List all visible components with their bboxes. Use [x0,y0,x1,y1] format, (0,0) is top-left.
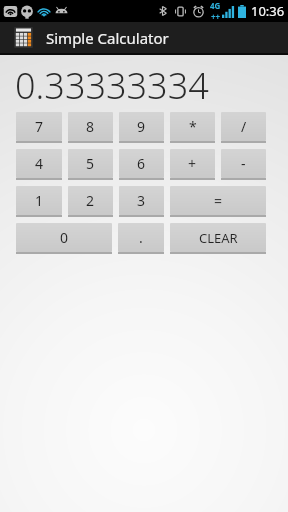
staticText: . [139,228,143,247]
button[interactable]: 2 [68,186,113,215]
button[interactable]: 0 [16,223,112,252]
button[interactable]: = [170,186,266,215]
staticText: 10:36 [251,2,285,20]
other: App icon [13,27,34,48]
staticText: 2 [86,191,95,210]
staticText: 9 [137,117,146,136]
staticText: 8 [86,117,95,136]
button[interactable]: . [118,223,164,252]
staticText: 4G [210,0,221,11]
staticText: + [188,154,197,173]
staticText: 1 [35,191,44,210]
staticText: / [241,117,247,136]
staticText: 7 [35,117,44,136]
staticText: 0 [60,228,69,247]
button[interactable]: 8 [68,112,113,141]
button[interactable]: + [170,149,215,178]
button[interactable]: App icon [13,27,169,48]
button[interactable]: 6 [119,149,164,178]
button[interactable]: * [170,112,215,141]
button[interactable]: 5 [68,149,113,178]
staticText: 4 [35,154,44,173]
staticText: 6 [137,154,146,173]
staticText: * [189,117,197,136]
button[interactable]: / [221,112,266,141]
staticText: ++ [211,11,221,22]
button[interactable]: 4 [16,149,62,178]
button[interactable]: - [221,149,266,178]
staticText: 3 [137,191,146,210]
button[interactable]: 1 [16,186,62,215]
button[interactable]: 7 [16,112,62,141]
staticText: 0.33333334 [15,61,209,107]
staticText: Simple Calculator [46,28,169,48]
button[interactable]: 9 [119,112,164,141]
staticText: 5 [86,154,95,173]
staticText: CLEAR [199,229,238,247]
staticText: - [241,154,246,173]
button[interactable]: 3 [119,186,164,215]
button[interactable]: CLEAR [170,223,266,252]
staticText: = [214,191,223,210]
